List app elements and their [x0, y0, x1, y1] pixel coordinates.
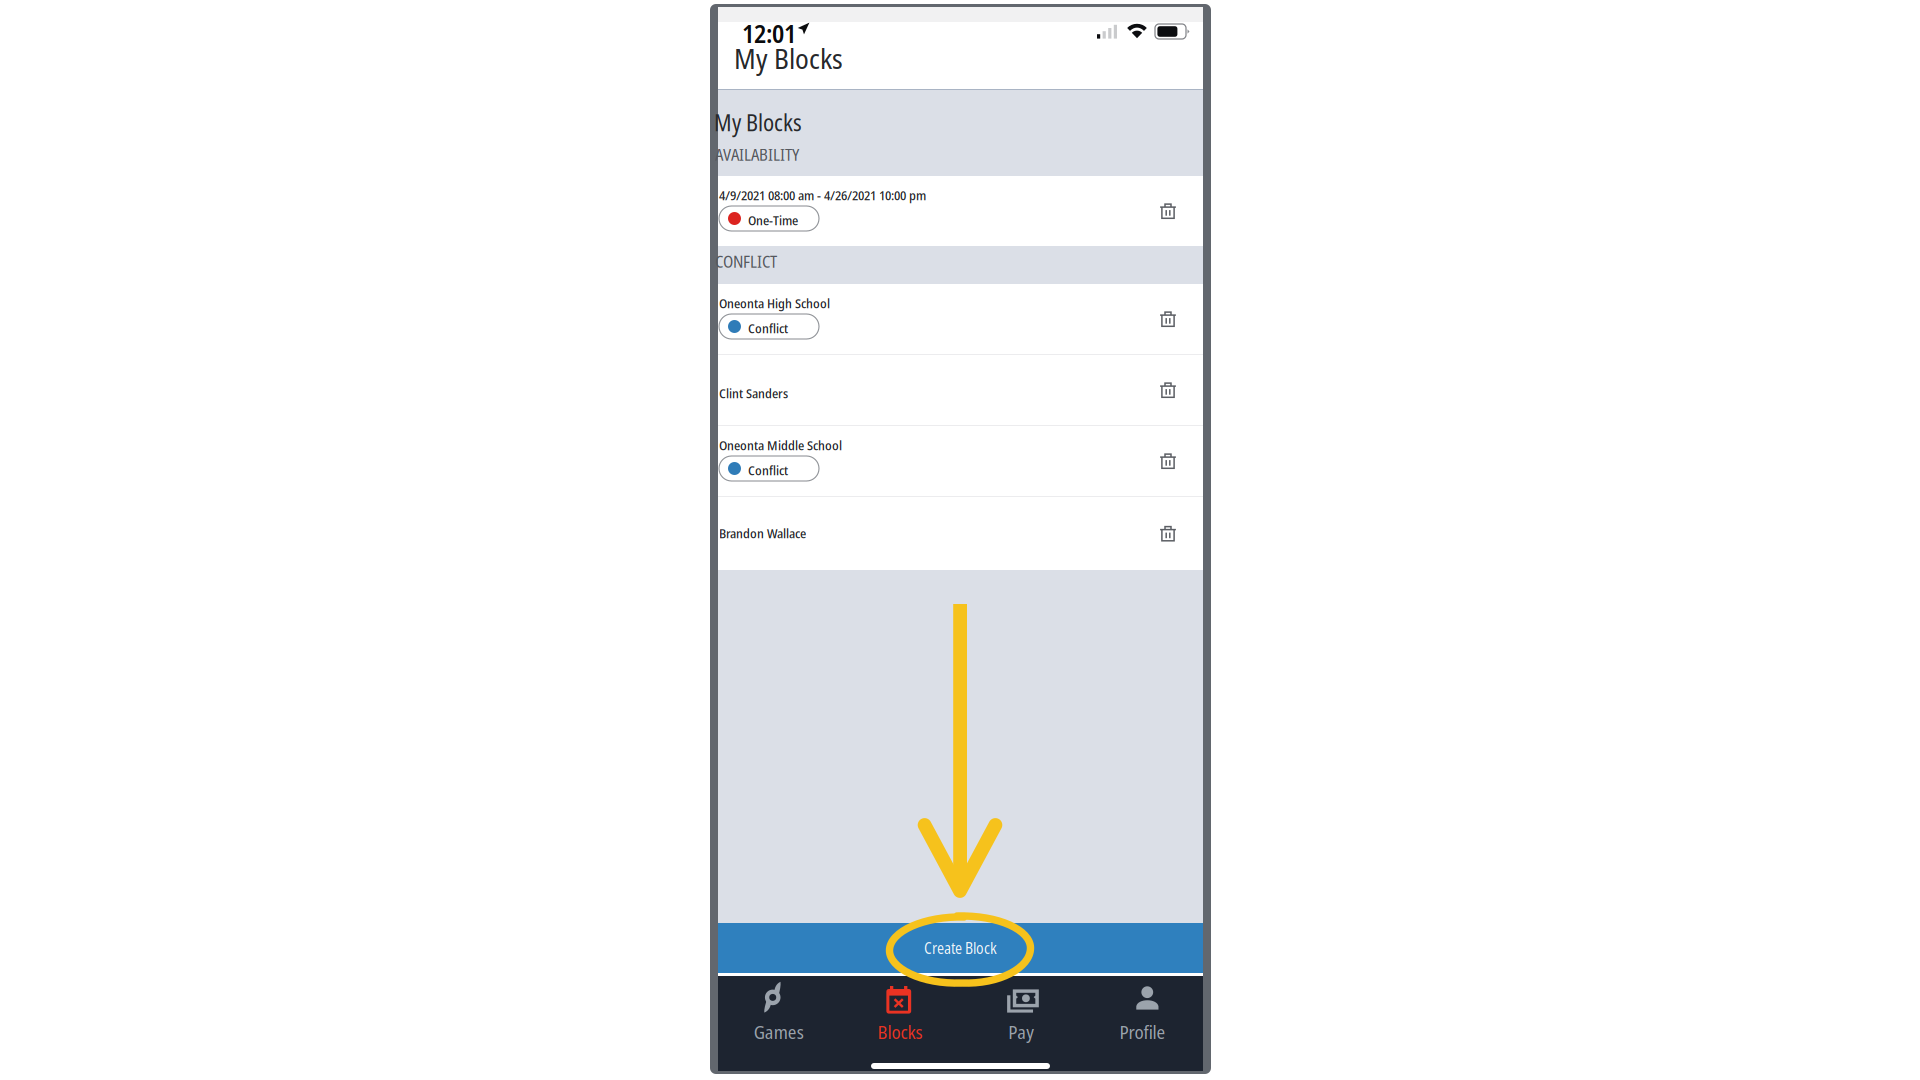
staticText: 4/9/2021 08:00 am - 4/26/2021 10:00 pm — [719, 186, 926, 204]
staticText: Clint Sanders — [719, 384, 788, 402]
staticText: My Blocks — [734, 39, 843, 77]
staticText: Oneonta Middle School — [719, 436, 842, 454]
staticText: AVAILABILITY — [715, 143, 799, 166]
button[interactable]: Delete Clint Sanders — [1146, 368, 1190, 412]
staticText: Pay — [1008, 1019, 1034, 1044]
staticText: Conflict — [748, 461, 788, 479]
button[interactable]: Delete Oneonta High School — [1146, 297, 1190, 341]
button[interactable]: Games — [718, 981, 839, 1053]
staticText: Oneonta High School — [719, 294, 830, 312]
button[interactable]: Pay — [960, 981, 1082, 1053]
staticText: Games — [754, 1019, 804, 1044]
staticText: Blocks — [877, 1019, 922, 1044]
button[interactable]: Blocks — [839, 981, 960, 1053]
staticText: Brandon Wallace — [719, 524, 806, 542]
button[interactable]: Create Block — [718, 923, 1203, 973]
button[interactable]: Profile — [1082, 981, 1203, 1053]
button[interactable]: Delete Brandon Wallace — [1146, 511, 1190, 555]
staticText: Conflict — [748, 319, 788, 337]
staticText: My Blocks — [714, 107, 802, 138]
staticText: One-Time — [748, 211, 798, 229]
button[interactable]: Delete Oneonta Middle School — [1146, 439, 1190, 483]
staticText: CONFLICT — [715, 250, 777, 273]
staticText: 12:01 — [742, 16, 796, 50]
button[interactable]: Delete 4/9/2021 08:00 am - 4/26/2021 10:… — [1146, 189, 1190, 233]
staticText: Profile — [1119, 1019, 1165, 1044]
staticText: Create Block — [924, 938, 997, 958]
